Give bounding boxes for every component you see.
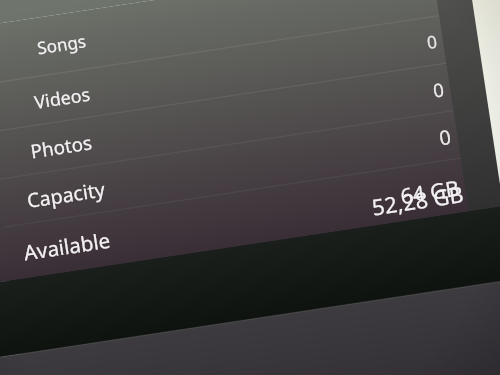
button[interactable]: iPhone storage settings (0, 0, 500, 375)
